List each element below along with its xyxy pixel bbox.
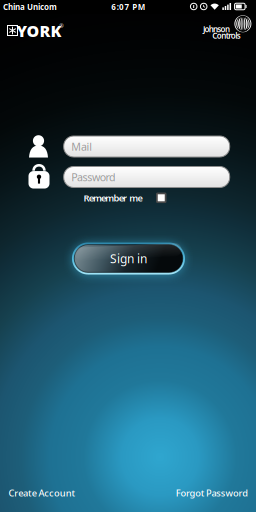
staticText: 6:07 PM — [111, 2, 146, 12]
staticText: China Unicom — [3, 2, 57, 12]
button[interactable]: Sign in — [72, 242, 185, 274]
button[interactable]: Mail — [64, 136, 230, 157]
staticText: Johnson — [203, 24, 230, 34]
staticText: YORK — [16, 20, 61, 41]
staticText: Forgot Password — [176, 487, 248, 499]
button[interactable]: Create Account — [8, 487, 75, 499]
button[interactable]: Remember — [83, 192, 166, 204]
staticText: me — [129, 192, 142, 204]
staticText: Create Account — [8, 487, 75, 499]
staticText: Mail — [71, 139, 92, 154]
staticText: Remember — [83, 192, 127, 204]
button[interactable]: Password — [64, 166, 230, 187]
staticText: Controls — [212, 30, 241, 41]
button[interactable]: Forgot Password — [176, 487, 248, 499]
staticText: Sign in — [110, 250, 147, 266]
staticText: ® — [59, 22, 63, 30]
staticText: Password — [71, 170, 116, 184]
